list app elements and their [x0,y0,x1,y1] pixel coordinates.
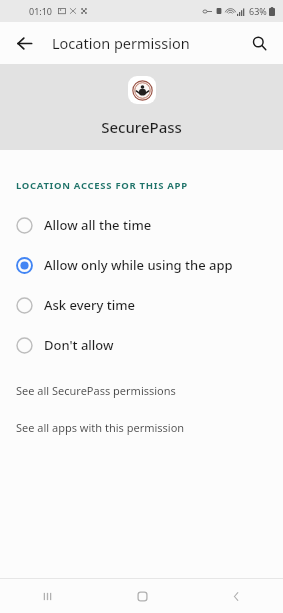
staticText: LOCATION ACCESS FOR THIS APP [16,179,188,192]
button[interactable]: See all SecurePass permissions [0,381,283,400]
staticText: Allow only while using the app [44,256,233,274]
staticText: Allow all the time [44,216,152,234]
staticText: 63% [249,5,267,17]
button[interactable]: Home [95,579,189,613]
button[interactable]: Recent apps [0,579,95,613]
button[interactable]: Don't allow [0,325,283,365]
button[interactable]: Ask every time [0,285,283,325]
button[interactable]: Allow all the time [0,205,283,245]
staticText: Don't allow [44,336,114,354]
button[interactable]: See all apps with this permission [0,418,283,437]
staticText: Location permission [52,33,190,53]
button[interactable]: Allow only while using the app [0,245,283,285]
staticText: See all SecurePass permissions [16,383,176,398]
staticText: See all apps with this permission [16,420,185,435]
button[interactable]: Back [189,579,283,613]
button[interactable]: Back [6,25,42,61]
staticText: SecurePass [101,117,182,137]
button[interactable]: Search [241,25,277,61]
staticText: Ask every time [44,296,136,314]
staticText: 01:10 [29,5,53,17]
